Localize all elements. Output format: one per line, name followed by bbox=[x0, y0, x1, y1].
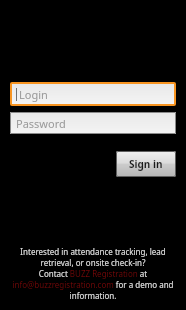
staticText: Sign in bbox=[129, 157, 163, 171]
button[interactable]: Password bbox=[10, 112, 176, 134]
button[interactable]: Login bbox=[12, 84, 174, 104]
staticText: Contact BUZZ Registration at info@buzzre… bbox=[3, 268, 183, 301]
staticText: Interested in attendance tracking, lead … bbox=[3, 246, 183, 268]
button[interactable]: Sign in bbox=[116, 151, 176, 177]
staticText: Login bbox=[19, 87, 48, 102]
staticText: Password bbox=[16, 116, 66, 131]
